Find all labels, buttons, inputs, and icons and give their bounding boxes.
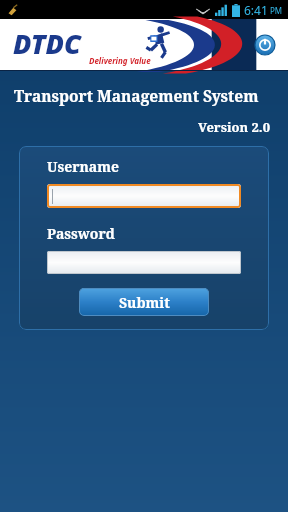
staticText: 6:41 (244, 2, 268, 18)
staticText: Password (47, 224, 115, 243)
staticText: Delivering Value (89, 55, 151, 66)
staticText: Transport Management System (14, 85, 278, 106)
staticText: PM (270, 5, 283, 16)
staticText: Submit (119, 293, 170, 312)
button[interactable]: Submit (79, 288, 209, 316)
button[interactable] (47, 251, 241, 274)
button[interactable] (47, 184, 241, 208)
button[interactable]: Power (255, 35, 275, 55)
staticText: Username (47, 157, 120, 176)
staticText: Version 2.0 (0, 118, 270, 136)
staticText: DTDC (13, 25, 82, 62)
